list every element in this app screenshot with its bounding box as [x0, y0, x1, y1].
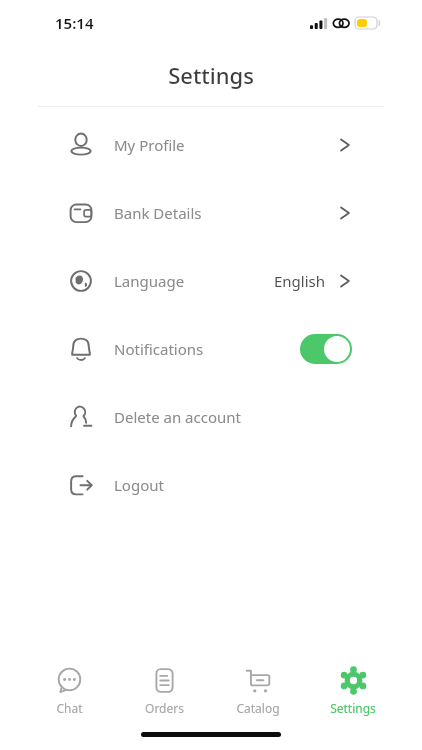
staticText: Settings: [330, 700, 376, 716]
button[interactable]: Chat: [30, 663, 108, 720]
staticText: Notifications: [114, 339, 204, 359]
button[interactable]: Delete an account: [0, 383, 422, 451]
other: Open: [338, 271, 352, 291]
button[interactable]: Logout: [0, 451, 422, 519]
button[interactable]: My Profile: [0, 111, 422, 179]
button[interactable]: Settings: [314, 663, 392, 720]
staticText: English: [274, 271, 326, 291]
button[interactable]: Language: [0, 247, 422, 315]
staticText: Settings: [168, 60, 254, 90]
staticText: Logout: [114, 475, 164, 495]
button[interactable]: Orders: [125, 663, 203, 720]
staticText: Language: [114, 271, 185, 291]
staticText: My Profile: [114, 135, 185, 155]
button[interactable]: Notifications toggle: [300, 334, 352, 364]
other: Open: [338, 135, 352, 155]
staticText: Bank Details: [114, 203, 202, 223]
button[interactable]: Notifications: [0, 315, 422, 383]
staticText: Delete an account: [114, 407, 241, 427]
button[interactable]: Bank Details: [0, 179, 422, 247]
staticText: Orders: [145, 700, 184, 716]
other: Open: [338, 203, 352, 223]
staticText: Chat: [56, 700, 83, 716]
staticText: Catalog: [236, 700, 280, 716]
button[interactable]: Catalog: [219, 663, 297, 720]
staticText: 15:14: [55, 13, 94, 33]
